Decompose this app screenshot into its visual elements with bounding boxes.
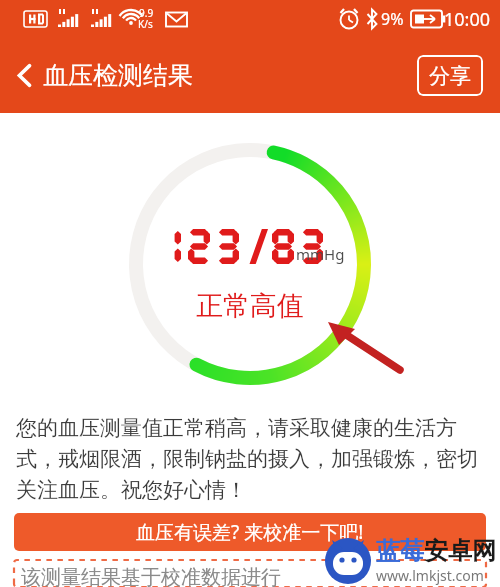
staticText: mmHg	[296, 244, 345, 264]
button[interactable]: 分享	[417, 55, 483, 96]
staticText: 安卓网	[424, 536, 496, 566]
staticText: 蓝莓	[376, 536, 424, 566]
button[interactable]: Back	[8, 50, 201, 101]
staticText: www.lmkjst.com	[376, 566, 484, 585]
staticText: 您的血压测量值正常稍高，请采取健康的生活方式，戒烟限酒，限制钠盐的摄入，加强锻炼…	[16, 415, 484, 503]
staticText: K/s	[138, 17, 153, 31]
staticText: 该测量结果基于校准数据进行	[21, 565, 281, 587]
button[interactable]: 血压有误差? 来校准一下吧!	[14, 513, 486, 551]
staticText: 正常高值	[196, 289, 304, 323]
staticText: 10:00	[444, 7, 491, 32]
staticText: 9%	[381, 8, 404, 30]
staticText: 血压检测结果	[43, 60, 193, 91]
staticText: 9.9	[139, 6, 154, 20]
staticText: 血压有误差? 来校准一下吧!	[136, 519, 364, 545]
staticText: 分享	[429, 63, 471, 89]
